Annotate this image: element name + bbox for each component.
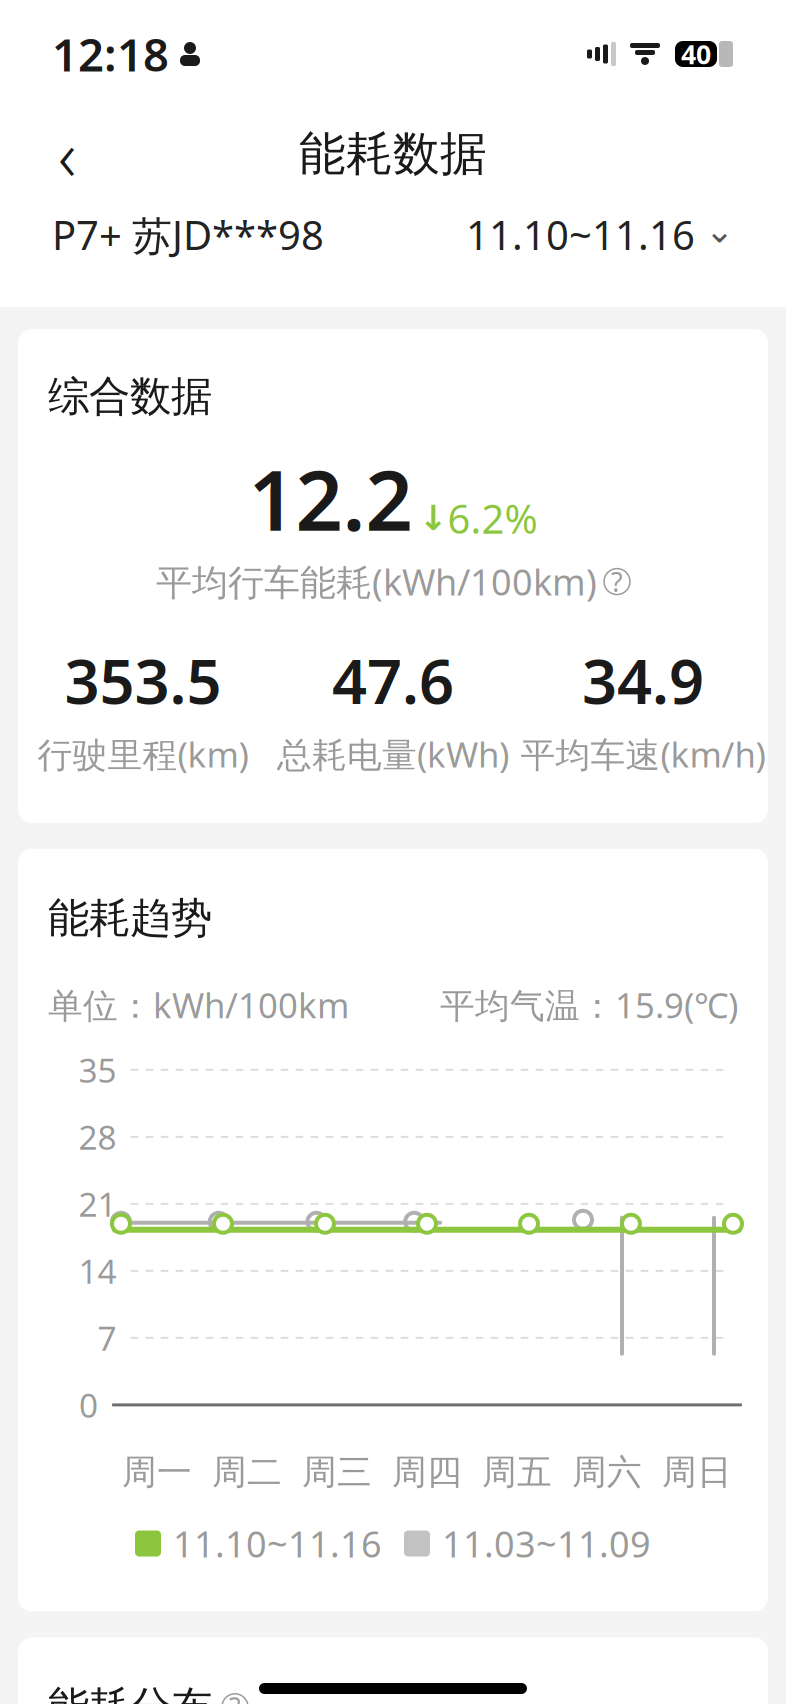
staticText: 47.6 <box>332 639 454 721</box>
staticText: P7+ 苏JD***98 <box>52 208 324 261</box>
staticText: 6.2% <box>447 491 537 545</box>
staticText: 平均行车能耗(kWh/100km) <box>156 558 597 605</box>
staticText: 周日 <box>662 1451 732 1494</box>
staticText: 周五 <box>482 1451 552 1494</box>
staticText: 能耗分布 <box>48 1681 212 1704</box>
staticText: 周四 <box>392 1451 462 1494</box>
staticText: 周二 <box>212 1451 282 1494</box>
staticText: 能耗趋势 <box>48 893 212 944</box>
button[interactable]: Back <box>32 119 102 189</box>
staticText: 11.03~11.09 <box>442 1520 651 1567</box>
staticText: 11.10~11.16 <box>466 208 695 261</box>
staticText: 28 <box>78 1115 116 1159</box>
staticText: 21 <box>78 1182 116 1226</box>
staticText: 34.9 <box>582 639 704 721</box>
staticText: 14 <box>78 1249 116 1293</box>
staticText: 能耗数据 <box>299 125 487 183</box>
staticText: 40 <box>681 36 711 72</box>
button[interactable]: 11.10~11.16 <box>466 200 734 269</box>
staticText: 12:18 <box>52 24 169 84</box>
staticText: 行驶里程(km) <box>37 731 248 777</box>
staticText: 周六 <box>572 1451 642 1494</box>
staticText: ↓ <box>418 498 447 538</box>
staticText: ? <box>611 564 623 599</box>
staticText: 11.10~11.16 <box>173 1520 382 1567</box>
staticText: 总耗电量(kWh) <box>277 731 509 777</box>
staticText: 7 <box>97 1316 116 1360</box>
staticText: 353.5 <box>64 639 221 721</box>
staticText: 平均车速(km/h) <box>520 731 765 777</box>
staticText: 0 <box>79 1383 98 1427</box>
staticText: 综合数据 <box>48 371 212 422</box>
staticText: ⌄ <box>705 211 734 250</box>
staticText: 周三 <box>302 1451 372 1494</box>
staticText: 35 <box>78 1048 116 1092</box>
staticText: 12.2 <box>248 444 412 554</box>
staticText: ? <box>229 1689 241 1704</box>
staticText: 平均气温：15.9(℃) <box>440 982 738 1028</box>
staticText: ‹ <box>58 108 76 200</box>
staticText: 单位：kWh/100km <box>48 982 349 1028</box>
staticText: 周一 <box>122 1451 192 1494</box>
